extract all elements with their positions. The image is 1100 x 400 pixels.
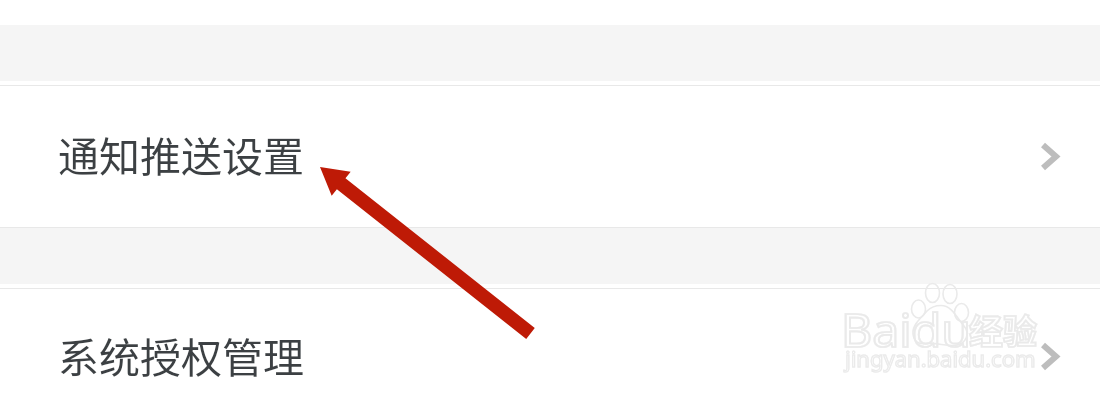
staticText: jingyan.baidu.com (845, 343, 1036, 373)
staticText: 系统授权管理 (58, 325, 304, 384)
staticText: 通知推送设置 (58, 124, 304, 183)
staticText: 经验 (969, 305, 1037, 354)
staticText: Baidu (841, 299, 971, 360)
button[interactable]: 通知推送设置 (0, 86, 1100, 227)
other: Open 系统授权管理 (1040, 342, 1059, 371)
button[interactable]: 系统授权管理 (0, 289, 1100, 400)
other: Open 通知推送设置 (1040, 142, 1059, 171)
